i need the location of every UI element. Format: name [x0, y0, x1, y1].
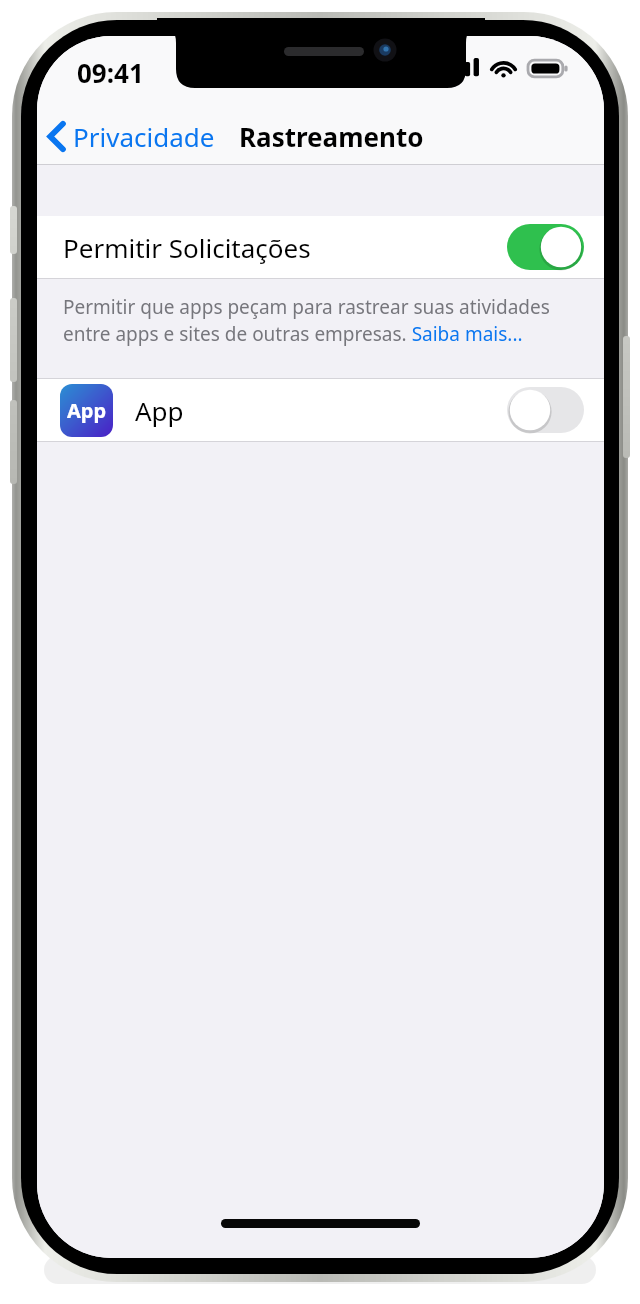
button[interactable]: Ativado — [507, 224, 584, 270]
button[interactable]: Permitir Solicitações — [37, 216, 604, 278]
staticText: Privacidade — [73, 119, 215, 154]
staticText: App — [67, 397, 107, 424]
staticText: 09:41 — [77, 55, 144, 90]
staticText: Permitir que apps peçam para rastrear su… — [63, 294, 588, 347]
button[interactable]: Desativado — [507, 387, 584, 433]
button[interactable]: App — [37, 379, 604, 441]
button[interactable]: Privacidade — [37, 113, 223, 160]
staticText: Permitir Solicitações — [63, 230, 311, 265]
button[interactable]: Permitir que apps peçam para rastrear su… — [37, 279, 604, 378]
staticText: App — [135, 393, 184, 428]
staticText: Rastreamento — [239, 119, 424, 154]
